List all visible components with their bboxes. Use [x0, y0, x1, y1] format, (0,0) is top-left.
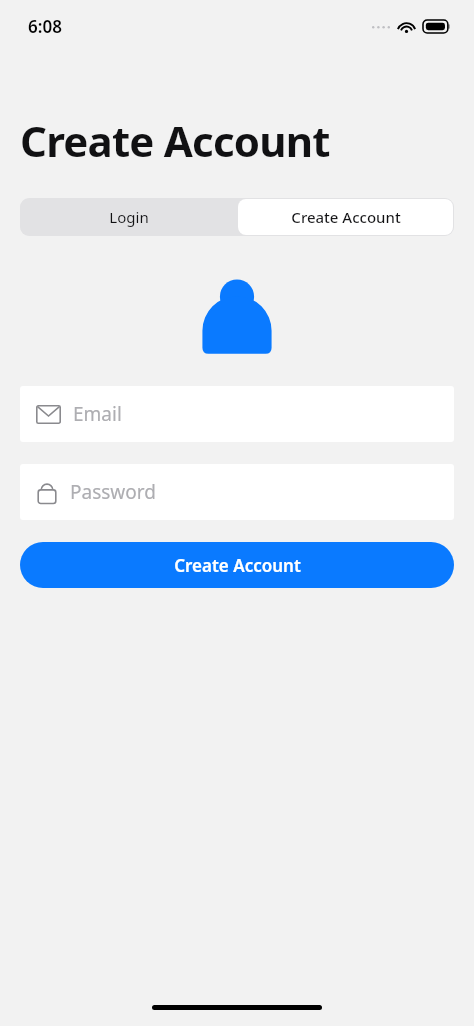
button[interactable]: Create Account [238, 199, 453, 235]
staticText: Create Account [174, 554, 301, 577]
staticText: 6:08 [28, 15, 62, 38]
staticText: Login [109, 207, 149, 227]
staticText: Create Account [291, 207, 401, 227]
staticText: Email [73, 401, 122, 427]
staticText: Create Account [20, 112, 330, 169]
button[interactable]: Create Account [20, 542, 454, 588]
button[interactable]: Login [20, 198, 237, 236]
button[interactable]: Email [20, 386, 454, 442]
staticText: Password [70, 479, 156, 505]
other: Home indicator [152, 1005, 322, 1010]
button[interactable]: Password [20, 464, 454, 520]
